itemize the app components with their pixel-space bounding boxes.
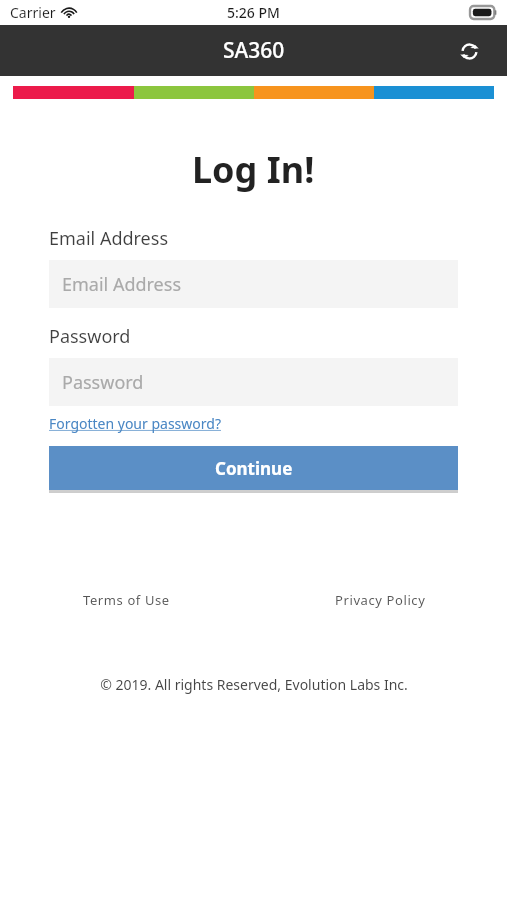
staticText: Password	[49, 324, 131, 349]
staticText: Privacy Policy	[335, 591, 426, 609]
staticText: Terms of Use	[83, 591, 170, 609]
staticText: Email Address	[49, 226, 169, 251]
button[interactable]: Terms of Use	[77, 585, 176, 615]
button[interactable]: Email Address	[49, 260, 458, 308]
staticText: SA360	[223, 36, 285, 65]
staticText: Email Address	[62, 272, 182, 297]
button[interactable]: Privacy Policy	[329, 585, 432, 615]
button[interactable]: Continue	[49, 446, 458, 490]
staticText: Forgotten your password?	[49, 414, 221, 433]
staticText: Continue	[215, 457, 293, 480]
button[interactable]: Refresh	[453, 35, 485, 67]
staticText: Password	[62, 370, 144, 395]
staticText: © 2019. All rights Reserved, Evolution L…	[100, 675, 408, 694]
button[interactable]: Password	[49, 358, 458, 406]
staticText: Log In!	[192, 145, 315, 194]
staticText: 5:26 PM	[227, 3, 280, 22]
staticText: Carrier	[10, 3, 56, 22]
button[interactable]: Forgotten your password?	[49, 414, 221, 433]
